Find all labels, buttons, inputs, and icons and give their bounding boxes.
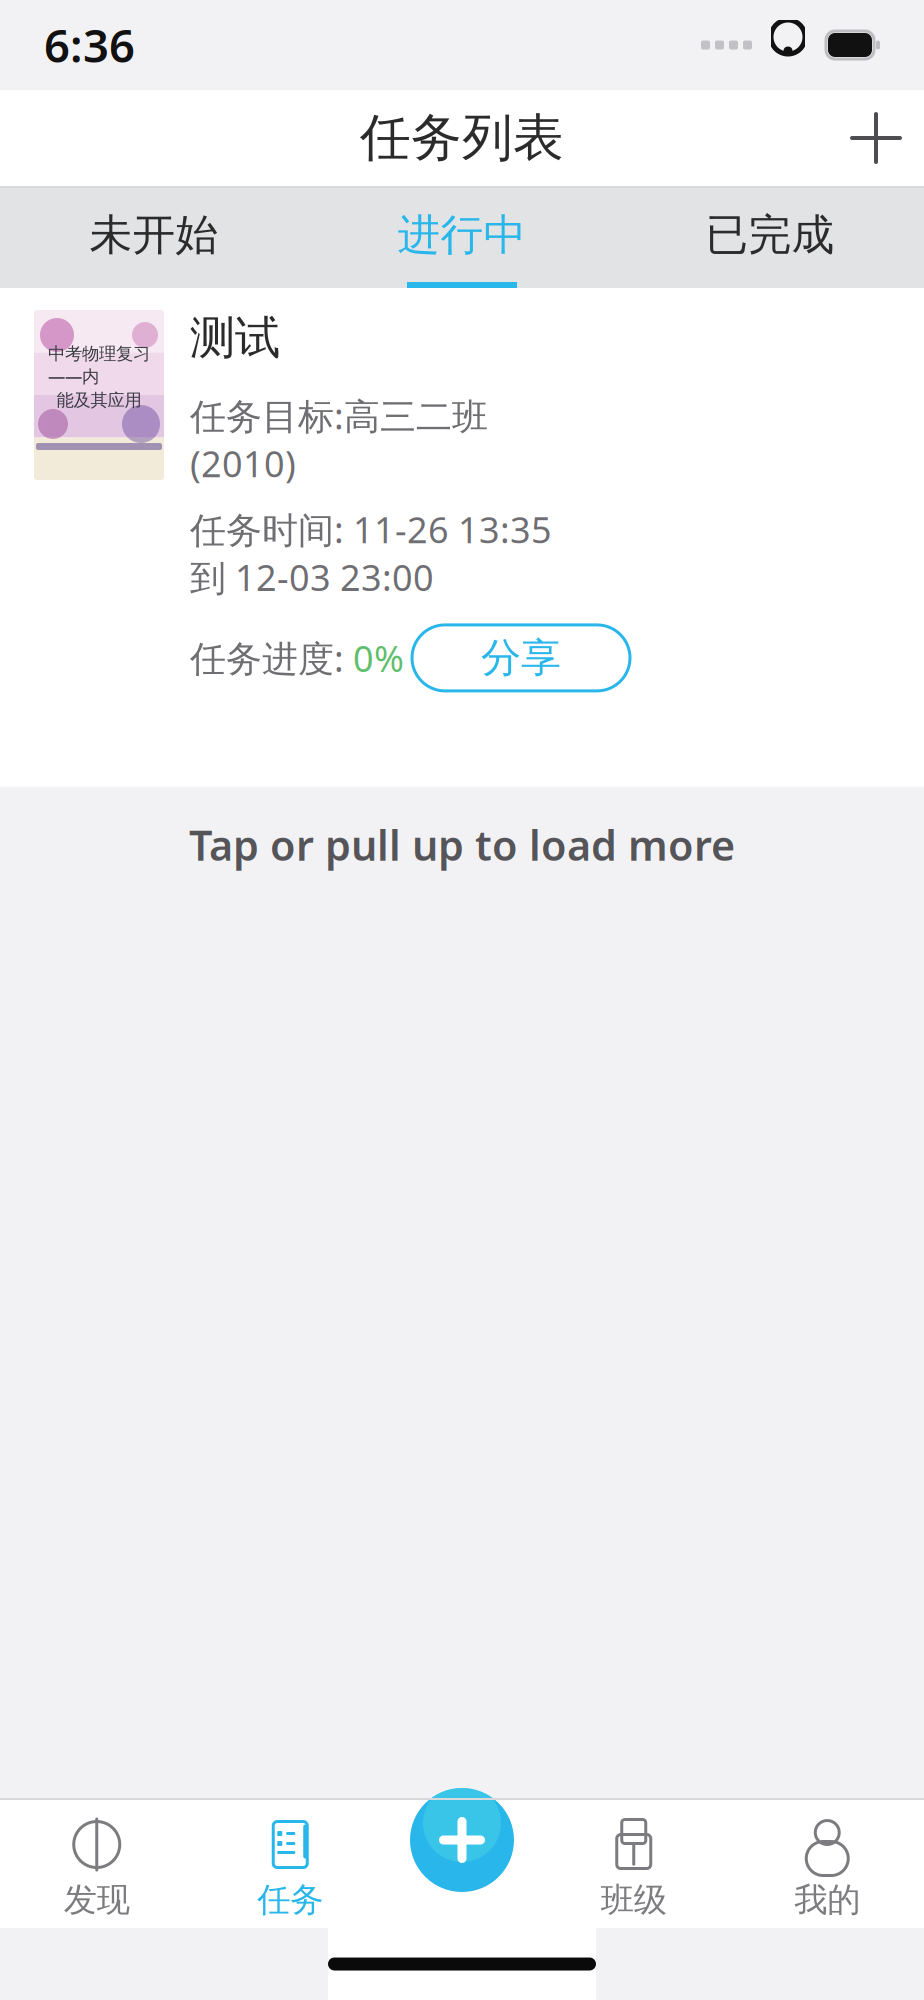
button[interactable]: Tap or pull up to load more: [0, 787, 924, 903]
button[interactable]: 任务: [193, 1815, 387, 1923]
staticText: 发现: [64, 1879, 130, 1920]
staticText: 能及其应用: [56, 389, 141, 411]
button[interactable]: 新建任务: [828, 98, 924, 178]
button[interactable]: 发现: [0, 1815, 193, 1923]
staticText: 分享: [481, 633, 561, 682]
staticText: 中考物理复习——内: [48, 343, 150, 387]
button[interactable]: 进行中: [308, 188, 616, 288]
staticText: Tap or pull up to load more: [189, 817, 735, 872]
staticText: 进行中: [397, 209, 526, 261]
staticText: 我的: [794, 1879, 860, 1920]
staticText: 任务: [257, 1879, 323, 1920]
button[interactable]: 分享: [412, 625, 630, 691]
staticText: 0%: [353, 634, 404, 682]
staticText: 任务列表: [360, 107, 564, 169]
staticText: 测试: [190, 310, 280, 366]
staticText: 班级: [601, 1879, 667, 1920]
staticText: 6:36: [44, 15, 135, 75]
button[interactable]: 未开始: [0, 188, 308, 288]
staticText: 任务目标:高三二班(2010): [190, 392, 488, 487]
staticText: 已完成: [705, 209, 834, 261]
button[interactable]: 我的: [730, 1815, 924, 1923]
button[interactable]: 已完成: [616, 188, 924, 288]
staticText: 任务时间: 11-26 13:35 到 12-03 23:00: [190, 505, 552, 601]
staticText: 未开始: [89, 209, 218, 261]
button[interactable]: 班级: [537, 1815, 730, 1923]
button[interactable]: 中考物理复习——内: [0, 288, 924, 787]
staticText: 任务进度:: [190, 634, 353, 682]
button[interactable]: 新建: [397, 1775, 527, 1905]
